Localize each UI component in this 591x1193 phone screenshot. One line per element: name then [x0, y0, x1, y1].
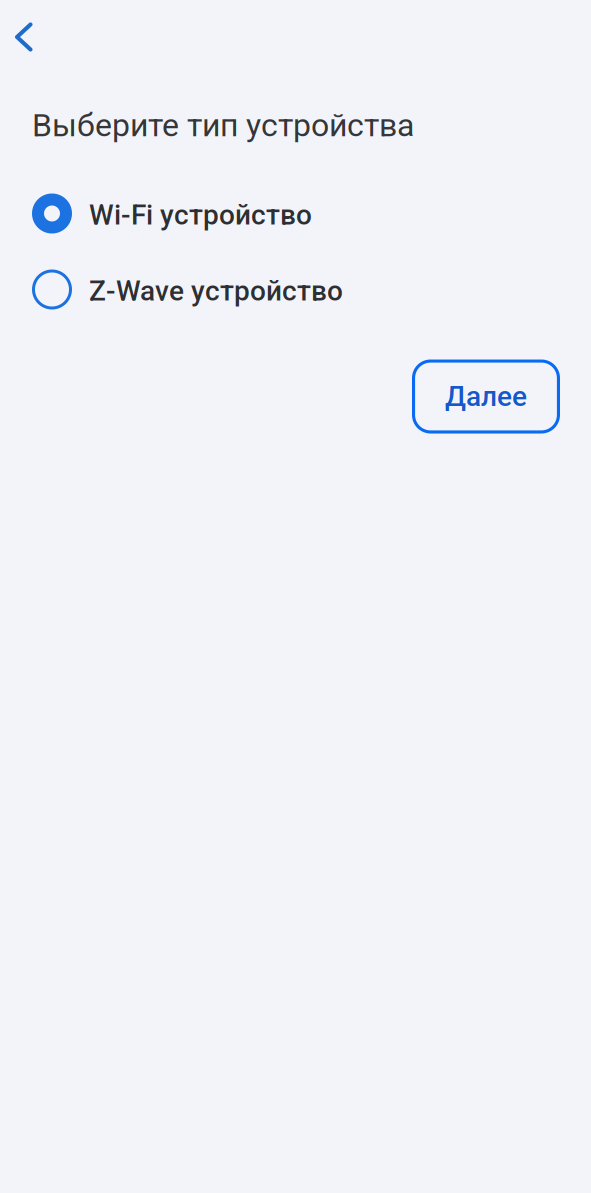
button[interactable]: Wi-Fi устройство — [32, 193, 591, 233]
button[interactable]: Z-Wave устройство — [32, 269, 591, 309]
staticText: Z-Wave устройство — [89, 275, 343, 307]
button[interactable]: Далее — [412, 359, 560, 433]
button[interactable]: Back — [0, 15, 48, 59]
staticText: Wi-Fi устройство — [89, 199, 312, 231]
staticText: Выберите тип устройства — [32, 106, 414, 144]
staticText: Далее — [445, 380, 527, 413]
